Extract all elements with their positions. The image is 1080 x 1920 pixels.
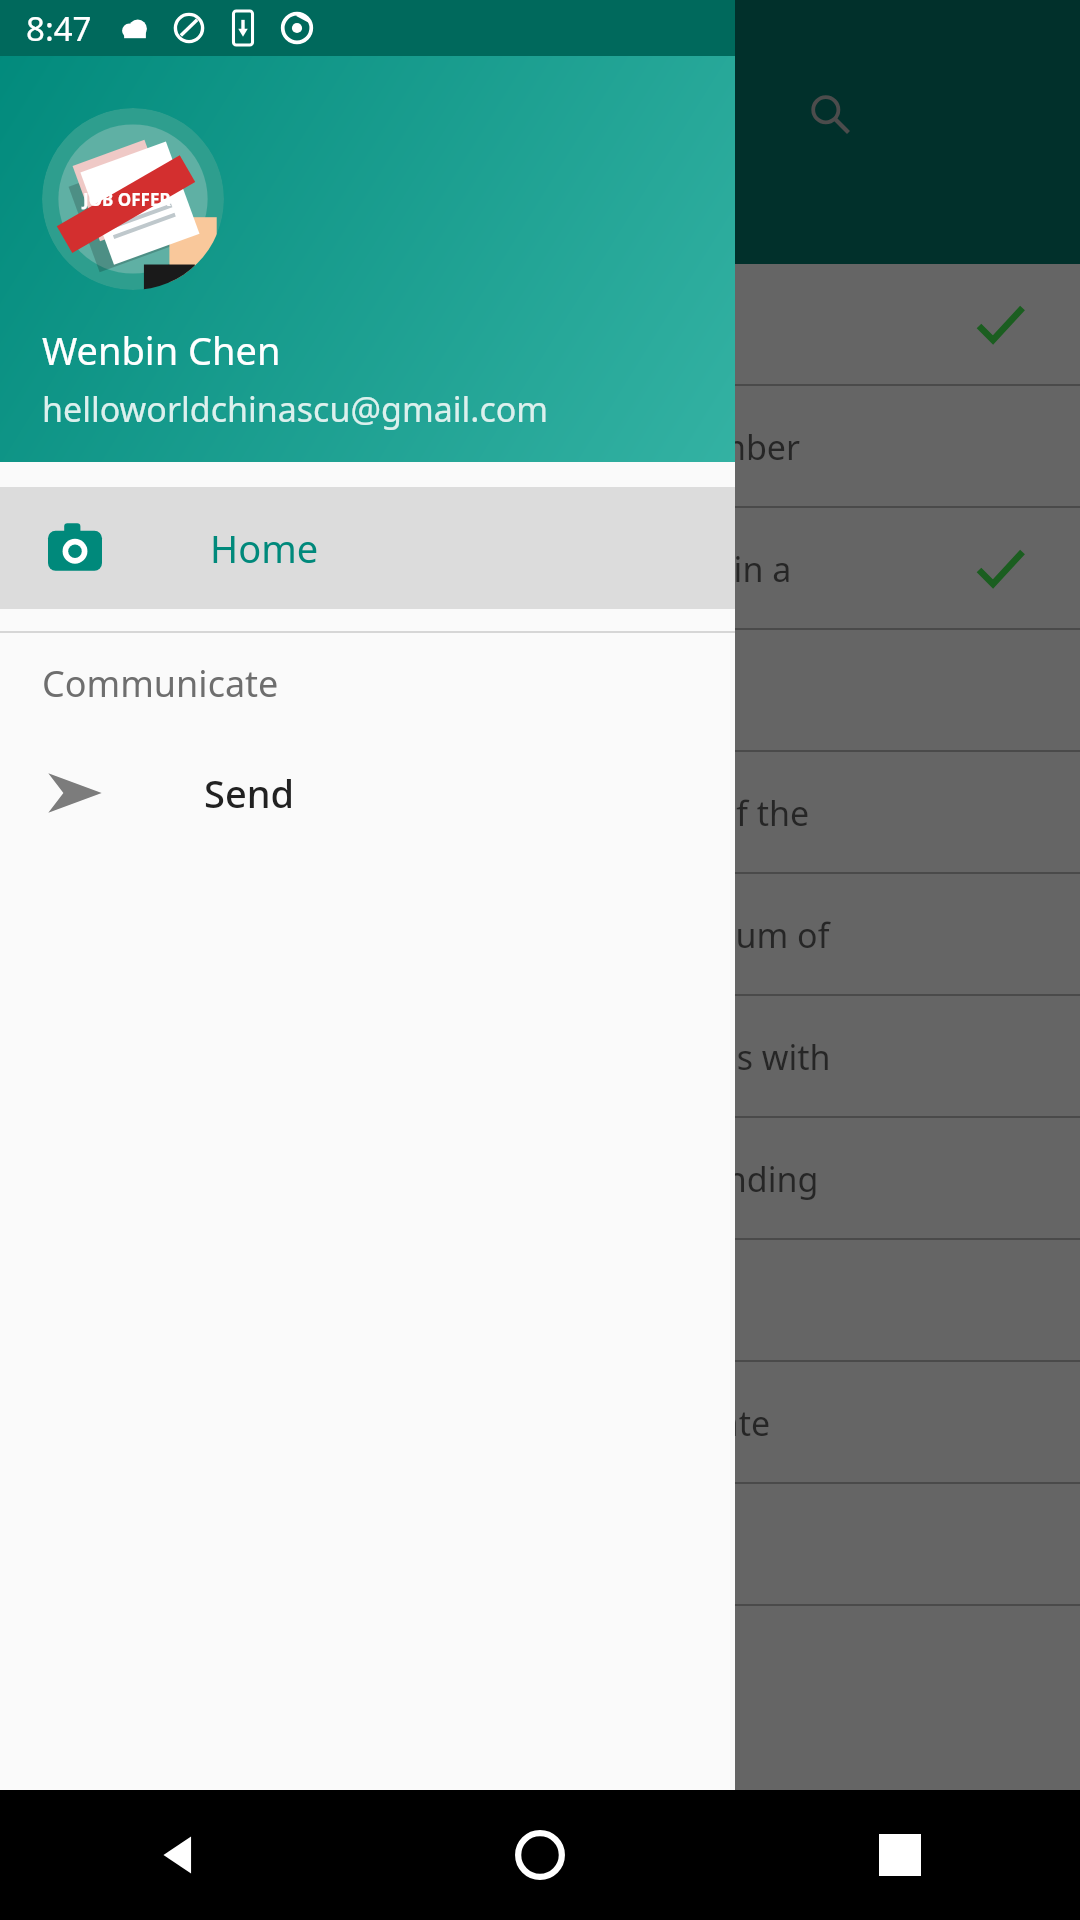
button[interactable]: Search bbox=[790, 74, 870, 154]
staticText: helloworldchinascu@gmail.com bbox=[42, 386, 549, 432]
button[interactable]: Value Greater Than bbox=[0, 630, 1080, 752]
staticText: Count Occurrences in a bbox=[420, 546, 792, 592]
button[interactable]: Recent apps bbox=[720, 1790, 1080, 1920]
button[interactable]: Profile photo bbox=[42, 108, 224, 290]
staticText: Calculate Squared Sum of bbox=[420, 912, 830, 958]
staticText: Wenbin Chen bbox=[42, 324, 281, 376]
button[interactable]: Home bbox=[0, 487, 735, 609]
staticText: Check If a Number bbox=[420, 302, 718, 348]
button[interactable]: Calculate Squared Sum of bbox=[0, 874, 1080, 996]
staticText: Find Maximum Number bbox=[420, 424, 801, 470]
button[interactable]: Count Occurrences in a bbox=[0, 508, 1080, 630]
staticText: Communicate bbox=[42, 659, 279, 708]
button[interactable]: Start to Communicate bbox=[0, 1362, 1080, 1484]
button[interactable]: Check If a Number bbox=[0, 264, 1080, 386]
button[interactable]: Home bbox=[360, 1790, 720, 1920]
staticText: Replace Occurrences with bbox=[420, 1034, 831, 1080]
staticText: Send bbox=[204, 767, 295, 819]
staticText: Compute Average of the bbox=[420, 790, 810, 836]
button[interactable]: Back bbox=[0, 1790, 360, 1920]
staticText: JOB OFFER bbox=[83, 188, 171, 211]
button[interactable]: Send bbox=[0, 733, 735, 853]
button[interactable]: Sum of All Points bbox=[0, 1484, 1080, 1606]
button[interactable]: Replace Occurrences with bbox=[0, 996, 1080, 1118]
button[interactable]: Find Maximum Number bbox=[0, 386, 1080, 508]
staticText: Home bbox=[210, 522, 319, 574]
staticText: Start to Communicate bbox=[420, 1400, 771, 1446]
button[interactable]: Compute Average of the bbox=[0, 752, 1080, 874]
staticText: 8:47 bbox=[26, 6, 92, 51]
button[interactable]: Sort Numbers Ascending bbox=[0, 1118, 1080, 1240]
staticText: Sort Numbers Ascending bbox=[420, 1156, 819, 1202]
button[interactable]: Reverse a List bbox=[0, 1240, 1080, 1362]
